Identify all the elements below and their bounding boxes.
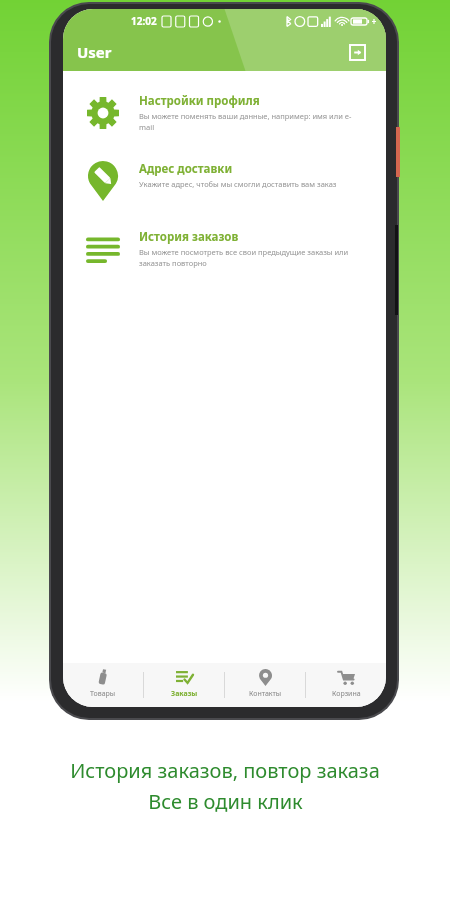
button[interactable]: Адрес доставки: [63, 155, 386, 207]
button[interactable]: Контакты: [225, 663, 305, 707]
button[interactable]: Настройки профиля: [63, 87, 386, 139]
staticText: User: [77, 42, 112, 62]
staticText: Все в один клик: [148, 788, 303, 815]
staticText: Адрес доставки: [139, 161, 233, 177]
button[interactable]: История заказов: [63, 223, 386, 275]
staticText: Вы можете поменять ваши данные, например…: [139, 111, 366, 132]
staticText: История заказов: [139, 229, 239, 245]
button[interactable]: Товары: [63, 663, 143, 707]
staticText: Укажите адрес, чтобы мы смогли доставить…: [139, 179, 337, 189]
staticText: Заказы: [171, 689, 198, 699]
button[interactable]: Корзина: [306, 663, 386, 707]
staticText: Корзина: [332, 689, 361, 699]
button[interactable]: Log out: [342, 37, 372, 67]
staticText: История заказов, повтор заказа: [70, 757, 380, 784]
staticText: Товары: [90, 689, 116, 699]
staticText: Контакты: [249, 689, 282, 699]
button[interactable]: Заказы: [144, 663, 224, 707]
staticText: 12:02: [131, 14, 157, 28]
staticText: Настройки профиля: [139, 93, 260, 109]
staticText: Вы можете посмотреть все свои предыдущие…: [139, 247, 366, 268]
